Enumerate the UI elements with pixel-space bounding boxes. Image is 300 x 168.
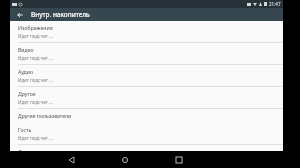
staticText: Изображения (18, 24, 53, 31)
staticText: Другое (18, 90, 36, 97)
staticText: Идет подсчет ... (18, 55, 53, 61)
staticText: Аудио (18, 68, 34, 75)
button[interactable]: Видео (10, 43, 283, 64)
button[interactable]: Главный экран (114, 151, 136, 168)
button[interactable]: Назад (60, 151, 82, 168)
button[interactable]: Аудио (10, 65, 283, 86)
button[interactable]: Обзор (168, 151, 190, 168)
staticText: Гость (18, 126, 32, 133)
staticText: Идет подсчет ... (18, 135, 53, 141)
button[interactable]: Гость (10, 123, 283, 144)
staticText: 21:47 (269, 1, 281, 7)
button[interactable]: Данные кеша (10, 145, 283, 166)
staticText: Идет подсчет ... (18, 99, 53, 105)
button[interactable]: Назад (14, 9, 25, 20)
staticText: Идет подсчет ... (18, 33, 53, 39)
button[interactable]: Изображения (10, 21, 283, 42)
staticText: Внутр. накопитель (31, 10, 90, 19)
staticText: Данные кеша (18, 148, 53, 155)
staticText: Другие пользователи (18, 113, 72, 120)
staticText: Идет подсчет ... (18, 77, 53, 83)
button[interactable]: Другое (10, 87, 283, 108)
staticText: Видео (18, 46, 34, 53)
